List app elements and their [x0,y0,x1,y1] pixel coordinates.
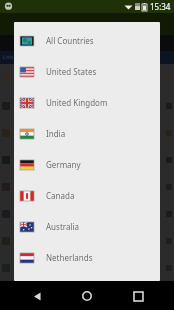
staticText: Netherlands [46,252,93,263]
staticText: Lists [3,54,14,61]
button[interactable]: Home [73,282,101,310]
staticText: 15:34 [150,1,171,12]
button[interactable]: Australia [14,211,160,242]
staticText: Germany [46,159,81,170]
button[interactable]: United States [14,56,160,87]
staticText: Canada [46,190,75,201]
staticText: United Kingdom [46,97,108,108]
staticText: All Countries [46,35,94,46]
button[interactable]: United Kingdom [14,87,160,118]
button[interactable]: Canada [14,180,160,211]
staticText: Australia [46,221,80,232]
staticText: United States [46,66,97,77]
button[interactable]: Back [23,282,51,310]
button[interactable]: Germany [14,149,160,180]
button[interactable]: India [14,118,160,149]
button[interactable]: All Countries [14,25,160,56]
button[interactable]: Netherlands [14,242,160,273]
button[interactable]: Recent apps [124,282,152,310]
staticText: India [46,128,66,139]
